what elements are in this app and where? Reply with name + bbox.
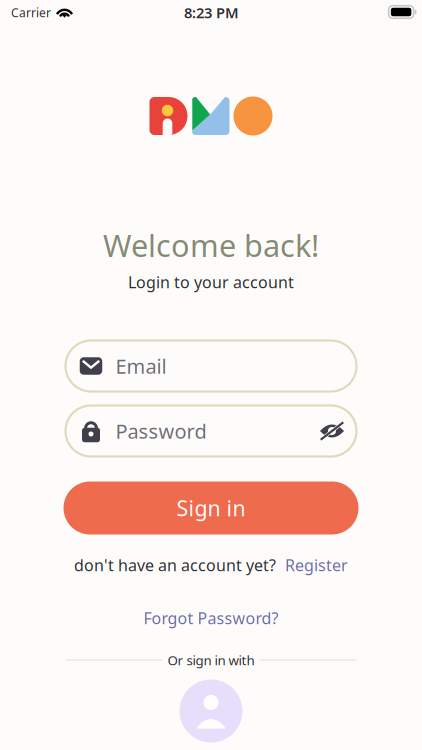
- staticText: Forgot Password?: [143, 607, 278, 629]
- button[interactable]: Sign in: [63, 481, 358, 534]
- staticText: don't have an account yet?: [74, 554, 276, 576]
- staticText: Welcome back!: [103, 225, 319, 265]
- staticText: Email: [115, 353, 166, 379]
- button[interactable]: Show password: [319, 421, 344, 440]
- staticText: Register: [285, 554, 348, 576]
- staticText: Password: [115, 418, 206, 444]
- button[interactable]: Forgot Password?: [143, 607, 278, 629]
- staticText: 8:23 PM: [184, 3, 239, 22]
- button[interactable]: Sign in with account: [179, 679, 242, 742]
- staticText: Or sign in with: [167, 651, 254, 669]
- staticText: Carrier: [11, 4, 51, 20]
- staticText: Sign in: [176, 494, 245, 522]
- button[interactable]: Register: [285, 554, 348, 576]
- staticText: Login to your account: [128, 271, 294, 293]
